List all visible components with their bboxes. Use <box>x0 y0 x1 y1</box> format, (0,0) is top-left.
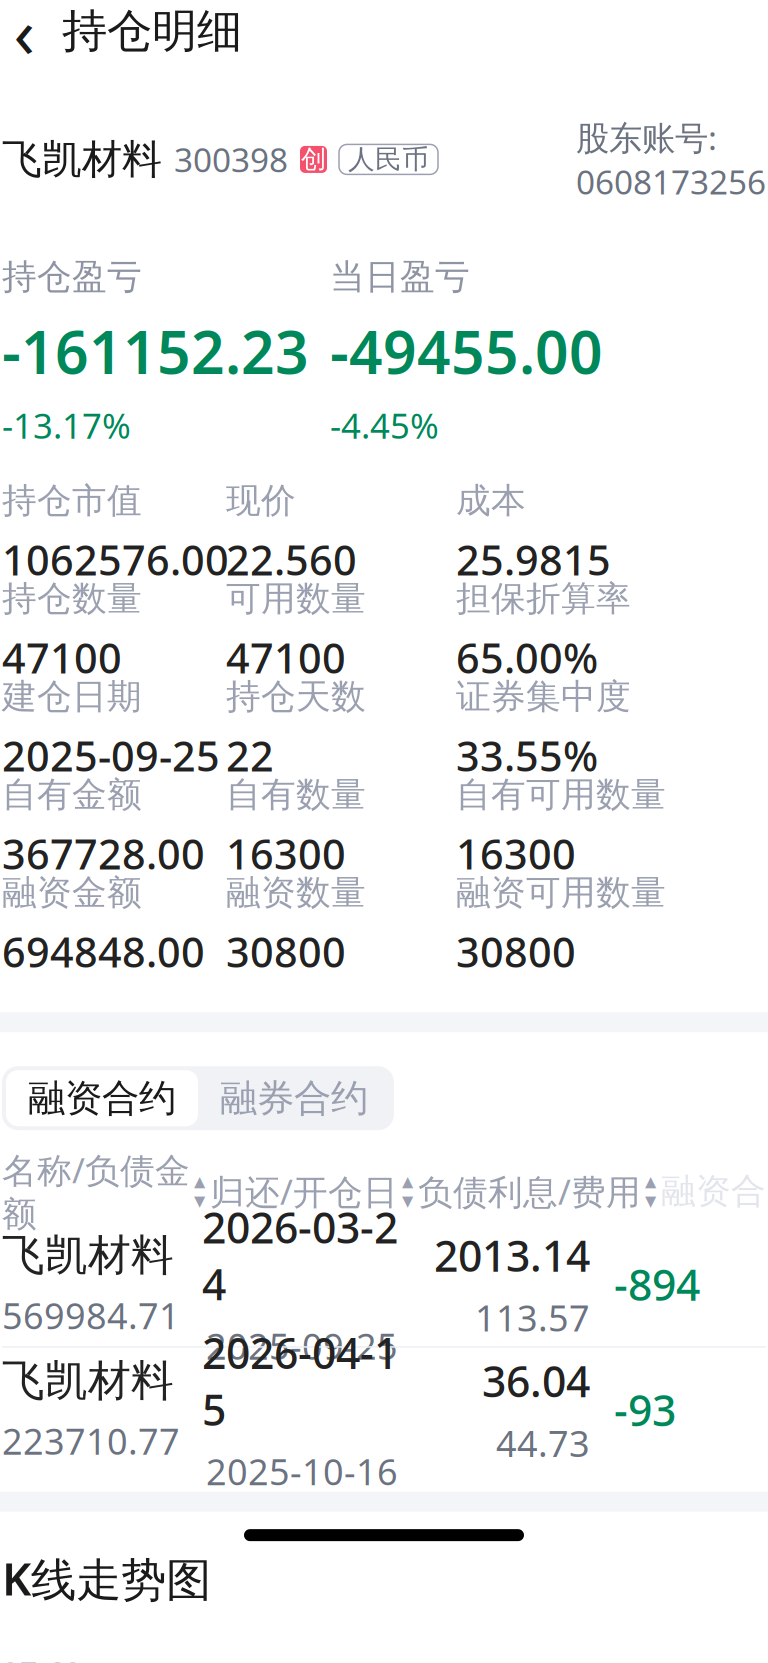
staticText: 2026-04-15 <box>202 1324 398 1437</box>
staticText: 归还/开仓日 <box>210 1168 398 1214</box>
staticText: 694848.00 <box>2 924 205 979</box>
button[interactable]: Back <box>0 1 54 61</box>
staticText: 飞凯材料 <box>2 135 162 184</box>
staticText: 当日盈亏 <box>330 256 470 298</box>
staticText: 2026-03-24 <box>202 1199 398 1312</box>
button[interactable]: 飞凯材料 <box>0 1348 768 1472</box>
staticText: 16300 <box>456 826 576 881</box>
staticText: 现价 <box>226 479 296 522</box>
staticText: 16300 <box>226 826 346 881</box>
staticText: 22.560 <box>226 532 357 587</box>
staticText: 负债利息/费用 <box>418 1168 641 1214</box>
staticText: 2013.14 <box>434 1227 590 1284</box>
staticText: -894 <box>614 1256 700 1313</box>
staticText: ▲ <box>402 1173 413 1190</box>
staticText: -161152.23 <box>2 312 309 390</box>
staticText: 人民币 <box>348 143 429 176</box>
staticText: 2025-09-25 <box>2 728 220 783</box>
staticText: 33.55% <box>456 728 598 783</box>
staticText: 25.9815 <box>456 532 611 587</box>
staticText: 367728.00 <box>2 826 205 881</box>
staticText: -49455.00 <box>330 312 603 390</box>
staticText: 创 <box>301 144 326 175</box>
staticText: 300398 <box>174 137 288 182</box>
staticText: 飞凯材料 <box>2 1355 174 1407</box>
staticText: ▲ <box>194 1173 205 1190</box>
staticText: 持仓天数 <box>226 675 366 718</box>
staticText: ▼ <box>645 1193 656 1209</box>
staticText: 可用数量 <box>226 577 366 620</box>
staticText: 持仓数量 <box>2 577 142 620</box>
button[interactable]: 融资合约 <box>6 1070 198 1126</box>
staticText: 自有数量 <box>226 773 366 816</box>
staticText: 名称/负债金额 <box>2 1147 190 1235</box>
button[interactable]: 融券合约 <box>198 1070 390 1126</box>
staticText: 股东账号:0608173256 <box>576 115 766 204</box>
staticText: 65.00% <box>456 630 598 685</box>
button[interactable]: 飞凯材料 <box>0 1222 768 1346</box>
staticText: 27.68 <box>2 1652 82 1663</box>
staticText: 2025-09-25 <box>206 1322 398 1370</box>
staticText: -93 <box>614 1381 676 1438</box>
staticText: 自有可用数量 <box>456 773 666 816</box>
staticText: ▼ <box>194 1193 205 1209</box>
staticText: 持仓盈亏 <box>2 256 142 298</box>
staticText: 569984.71 <box>2 1291 180 1339</box>
staticText: 自有金额 <box>2 773 142 816</box>
staticText: -13.17% <box>2 402 131 448</box>
staticText: 47100 <box>2 630 122 685</box>
staticText: 30800 <box>226 924 346 979</box>
staticText: 证券集中度 <box>456 675 631 718</box>
staticText: 44.73 <box>496 1419 590 1467</box>
staticText: 融资合约 <box>28 1075 176 1121</box>
staticText: 建仓日期 <box>2 675 142 718</box>
staticText: 持仓明细 <box>62 3 242 59</box>
staticText: 113.57 <box>475 1294 590 1341</box>
staticText: 融资数量 <box>226 871 366 914</box>
staticText: 36.04 <box>482 1352 590 1409</box>
staticText: 1062576.00 <box>2 532 229 587</box>
staticText: -4.45% <box>330 402 439 448</box>
staticText: 担保折算率 <box>456 577 631 620</box>
staticText: 融资可用数量 <box>456 871 666 914</box>
staticText: ▼ <box>402 1193 413 1209</box>
staticText: 22 <box>226 728 274 783</box>
staticText: K线走势图 <box>2 1548 211 1608</box>
staticText: 持仓市值 <box>2 479 142 522</box>
staticText: 30800 <box>456 924 576 979</box>
staticText: 47100 <box>226 630 346 685</box>
staticText: ▲ <box>645 1173 656 1190</box>
staticText: 成本 <box>456 479 526 522</box>
staticText: 融资金额 <box>2 871 142 914</box>
staticText: 融券合约 <box>220 1075 368 1121</box>
staticText: 飞凯材料 <box>2 1229 174 1281</box>
staticText: 融资合 <box>661 1170 766 1212</box>
staticText: 223710.77 <box>2 1417 180 1465</box>
staticText: ‹ <box>13 0 34 77</box>
staticText: 2025-10-16 <box>206 1447 398 1495</box>
